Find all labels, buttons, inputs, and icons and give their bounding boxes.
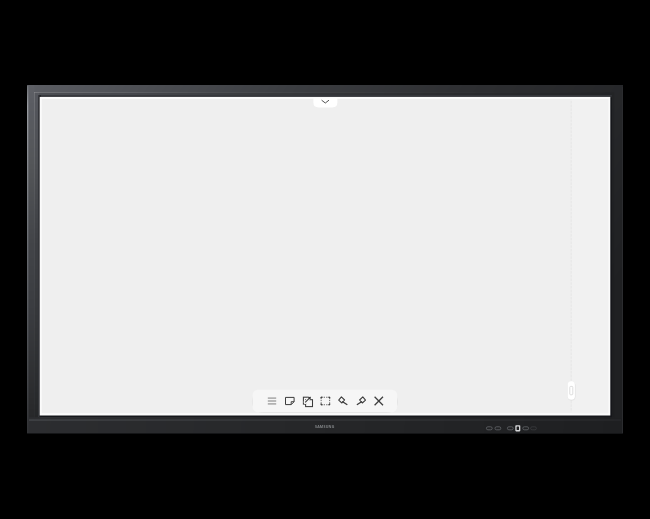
button[interactable]: Menu [263, 390, 281, 412]
button[interactable]: Note [281, 390, 299, 412]
button[interactable]: Undo [334, 390, 352, 412]
staticText: SAMSUNG [315, 424, 335, 429]
button[interactable]: Collapse panel [314, 98, 338, 108]
button[interactable]: Redo [352, 390, 370, 412]
button[interactable]: Close [370, 390, 388, 412]
button[interactable]: Panel handle [568, 382, 576, 401]
button[interactable]: Duplicate [299, 390, 317, 412]
button[interactable]: Select area [317, 390, 335, 412]
